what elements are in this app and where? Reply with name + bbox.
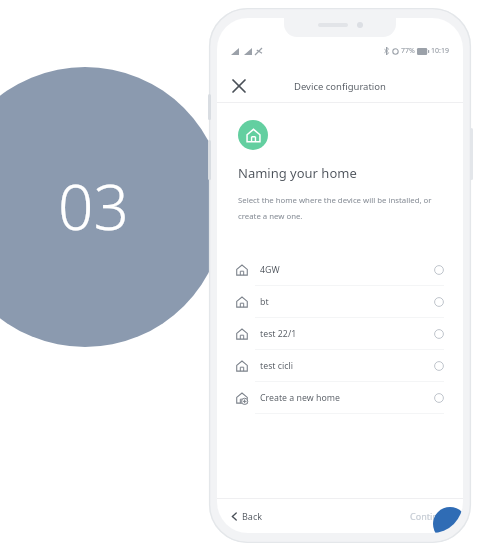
staticText: test 22/1 <box>260 328 297 340</box>
staticText: 10:19 <box>431 46 449 56</box>
staticText: 03 <box>58 164 129 248</box>
staticText: Select the home where the device will be… <box>238 195 432 206</box>
staticText: Device configuration <box>294 80 386 93</box>
staticText: test cicli <box>260 360 294 372</box>
staticText: Back <box>242 510 263 522</box>
button[interactable]: test cicli <box>217 350 463 381</box>
button[interactable]: Continue <box>433 507 463 533</box>
button[interactable]: Back <box>227 506 267 526</box>
button[interactable]: 4GW <box>217 254 463 285</box>
button[interactable]: Create a new home <box>217 382 463 413</box>
staticText: Naming your home <box>238 164 357 182</box>
button[interactable]: Close <box>225 72 253 100</box>
staticText: create a new one. <box>238 211 303 222</box>
staticText: Create a new home <box>260 392 340 404</box>
button[interactable]: Continue <box>406 506 453 526</box>
staticText: bt <box>260 296 269 308</box>
button[interactable]: test 22/1 <box>217 318 463 349</box>
staticText: Continue <box>410 510 449 522</box>
button[interactable]: bt <box>217 286 463 317</box>
staticText: 77% <box>401 46 415 56</box>
staticText: 4GW <box>260 264 280 276</box>
